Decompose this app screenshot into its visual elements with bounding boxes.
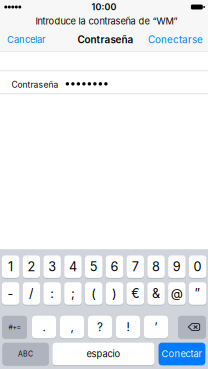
button[interactable]: 7 [127,255,144,278]
staticText: 10:00 [91,2,116,12]
staticText: 1 [8,259,13,274]
staticText: 3 [48,259,56,274]
staticText: 5 [90,259,98,274]
staticText: € [131,286,139,301]
button[interactable]: € [127,282,144,305]
staticText: 9 [173,259,181,274]
staticText: 2 [27,259,35,274]
button[interactable]: 0 [189,255,206,278]
staticText: Contraseña [77,34,133,46]
button[interactable]: ’ [144,315,168,339]
staticText: / [29,286,34,301]
button[interactable]: / [23,282,40,305]
staticText: 6 [110,259,118,274]
staticText: Introduce la contraseña de “WM” [35,16,177,27]
button[interactable]: , [60,315,84,339]
staticText: ” [195,286,201,301]
button[interactable]: 2 [23,255,40,278]
button[interactable]: #+= [2,315,27,339]
button[interactable]: . [32,315,56,339]
staticText: #+= [8,323,20,331]
staticText: ? [97,320,103,334]
staticText: 4 [69,259,77,274]
button[interactable]: 5 [85,255,102,278]
staticText: Conectar [161,348,202,360]
button[interactable]: & [147,282,165,305]
button[interactable]: 8 [147,255,165,278]
staticText: 8 [152,259,160,274]
staticText: ; [71,286,75,301]
staticText: : [50,286,54,301]
button[interactable]: : [43,282,61,305]
button[interactable]: 6 [106,255,123,278]
staticText: ABC [18,350,33,358]
button[interactable]: Borrar [178,315,206,339]
button[interactable]: ABC [2,342,49,366]
staticText: . [42,320,45,334]
button[interactable]: espacio [52,342,154,366]
staticText: 0 [194,259,202,274]
button[interactable]: 3 [43,255,61,278]
button[interactable]: 9 [168,255,185,278]
button[interactable]: ) [106,282,123,305]
button[interactable]: 1 [2,255,19,278]
staticText: - [8,286,14,301]
button[interactable]: 4 [64,255,82,278]
staticText: , [70,320,73,334]
button[interactable]: ( [85,282,102,305]
button[interactable]: - [2,282,19,305]
staticText: ) [112,286,117,301]
button[interactable]: Conectar [159,342,205,366]
staticText: @ [171,286,183,301]
button[interactable]: ” [189,282,206,305]
staticText: Cancelar [7,34,46,45]
button[interactable]: Cancelar [0,29,52,51]
button[interactable]: ! [116,315,140,339]
staticText: & [152,286,160,301]
staticText: Conectarse [148,34,203,46]
staticText: ! [126,320,129,334]
staticText: ( [91,286,96,301]
staticText: 7 [132,259,139,274]
button[interactable]: @ [168,282,185,305]
button[interactable]: Conectarse [142,29,208,51]
staticText: Contraseña [11,79,58,90]
staticText: ’ [154,320,157,334]
staticText: espacio [86,348,120,360]
button[interactable]: ; [64,282,82,305]
button[interactable]: ? [88,315,112,339]
